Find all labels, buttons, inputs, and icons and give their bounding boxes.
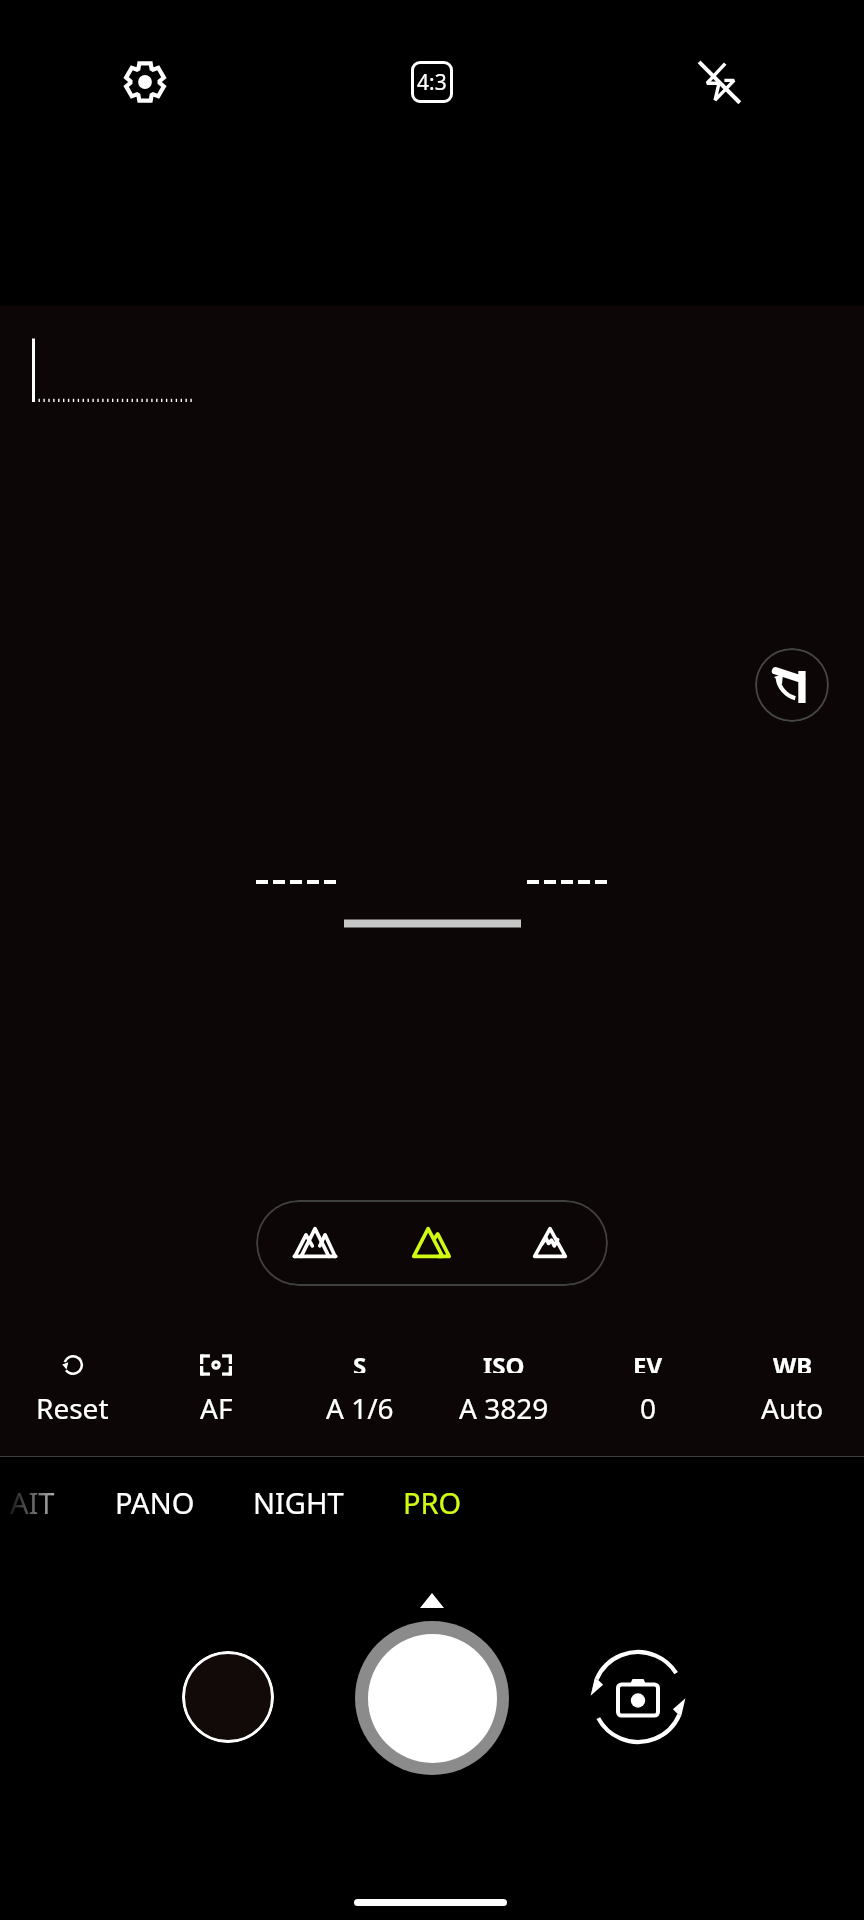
staticText: PANO: [115, 1483, 195, 1522]
staticText: AF: [200, 1389, 233, 1427]
button[interactable]: PRO: [387, 1472, 478, 1533]
staticText: EV: [633, 1349, 663, 1373]
button[interactable]: S: [288, 1337, 432, 1456]
button[interactable]: Flash off: [673, 34, 769, 130]
staticText: ISO: [483, 1349, 525, 1373]
button[interactable]: AIT: [0, 1472, 71, 1533]
button[interactable]: Reset: [0, 1337, 144, 1456]
button[interactable]: AF: [144, 1337, 288, 1456]
button[interactable]: Switch camera: [588, 1647, 688, 1747]
button[interactable]: Wide lens: [374, 1200, 491, 1286]
staticText: A 1/6: [326, 1389, 394, 1427]
button[interactable]: Ultra wide lens: [256, 1200, 374, 1286]
staticText: A 3829: [459, 1389, 549, 1427]
button[interactable]: PANO: [99, 1472, 211, 1533]
button[interactable]: Telephoto lens: [491, 1200, 608, 1286]
button[interactable]: Gallery: [182, 1651, 274, 1743]
button[interactable]: WB: [720, 1337, 864, 1456]
button[interactable]: Take photo: [355, 1621, 509, 1775]
button[interactable]: Settings: [97, 34, 193, 130]
staticText: Auto: [761, 1389, 824, 1427]
staticText: 0: [640, 1389, 657, 1427]
button[interactable]: EV: [576, 1337, 720, 1456]
button[interactable]: Aspect ratio 4 to 3: [384, 34, 480, 130]
button[interactable]: NIGHT: [237, 1472, 360, 1533]
staticText: NIGHT: [253, 1483, 344, 1522]
staticText: AIT: [10, 1483, 55, 1522]
button[interactable]: ISO: [432, 1337, 576, 1456]
staticText: PRO: [403, 1483, 462, 1522]
staticText: WB: [773, 1349, 813, 1373]
staticText: 4:3: [417, 68, 447, 97]
staticText: S: [353, 1349, 367, 1373]
staticText: Reset: [36, 1389, 109, 1427]
button[interactable]: Level guide: [755, 648, 829, 722]
